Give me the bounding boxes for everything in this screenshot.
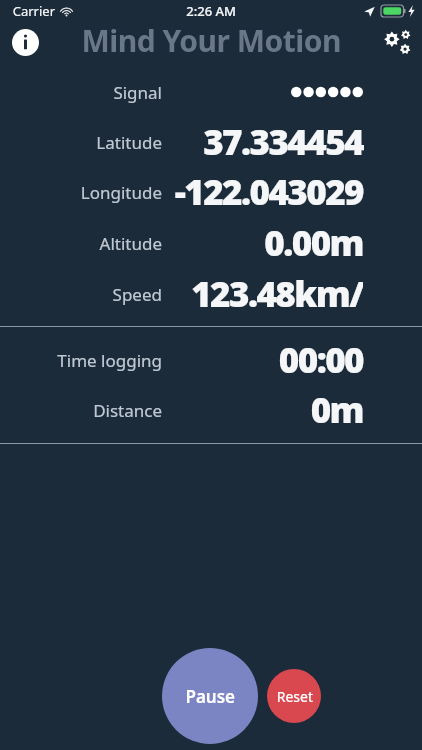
staticText: Speed [112,283,162,306]
button[interactable]: Reset [267,669,321,723]
button[interactable]: Settings [376,22,416,62]
staticText: Pause [185,685,235,708]
staticText: Latitude [96,131,162,154]
staticText: Altitude [99,232,162,255]
staticText: 37.334454 [203,118,363,166]
staticText: Distance [93,399,162,422]
staticText: Reset [276,687,313,706]
staticText: 0m [310,386,363,434]
staticText: -122.043029 [174,168,363,216]
staticText: Longitude [80,181,162,204]
button[interactable]: Pause [162,648,258,744]
staticText: 00:00 [278,336,363,384]
staticText: Mind Your Motion [81,20,341,61]
staticText: 123.48km/h [170,270,363,318]
staticText: Time logging [57,349,162,372]
button[interactable]: Info [7,24,43,60]
staticText: Signal [113,81,162,104]
staticText: 2:26 AM [186,2,236,20]
staticText: 0.00m [264,219,363,267]
staticText: Carrier [12,2,55,20]
